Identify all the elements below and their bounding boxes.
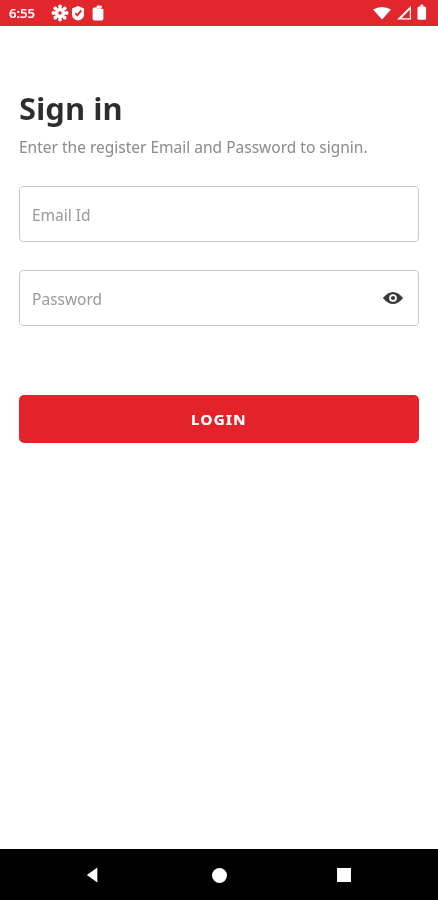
button[interactable]: Recent apps xyxy=(323,854,365,896)
button[interactable]: Back xyxy=(72,854,114,896)
staticText: 6:55 xyxy=(9,4,35,22)
button[interactable]: LOGIN xyxy=(19,395,419,443)
staticText: Enter the register Email and Password to… xyxy=(19,136,368,157)
button[interactable]: Home xyxy=(198,854,240,896)
staticText: LOGIN xyxy=(191,409,247,429)
staticText: Sign in xyxy=(19,87,123,129)
staticText: Password xyxy=(32,288,103,309)
button[interactable]: Password xyxy=(19,270,419,326)
button[interactable]: Show password xyxy=(380,285,406,311)
staticText: Email Id xyxy=(32,204,91,225)
button[interactable]: Email Id xyxy=(19,186,419,242)
